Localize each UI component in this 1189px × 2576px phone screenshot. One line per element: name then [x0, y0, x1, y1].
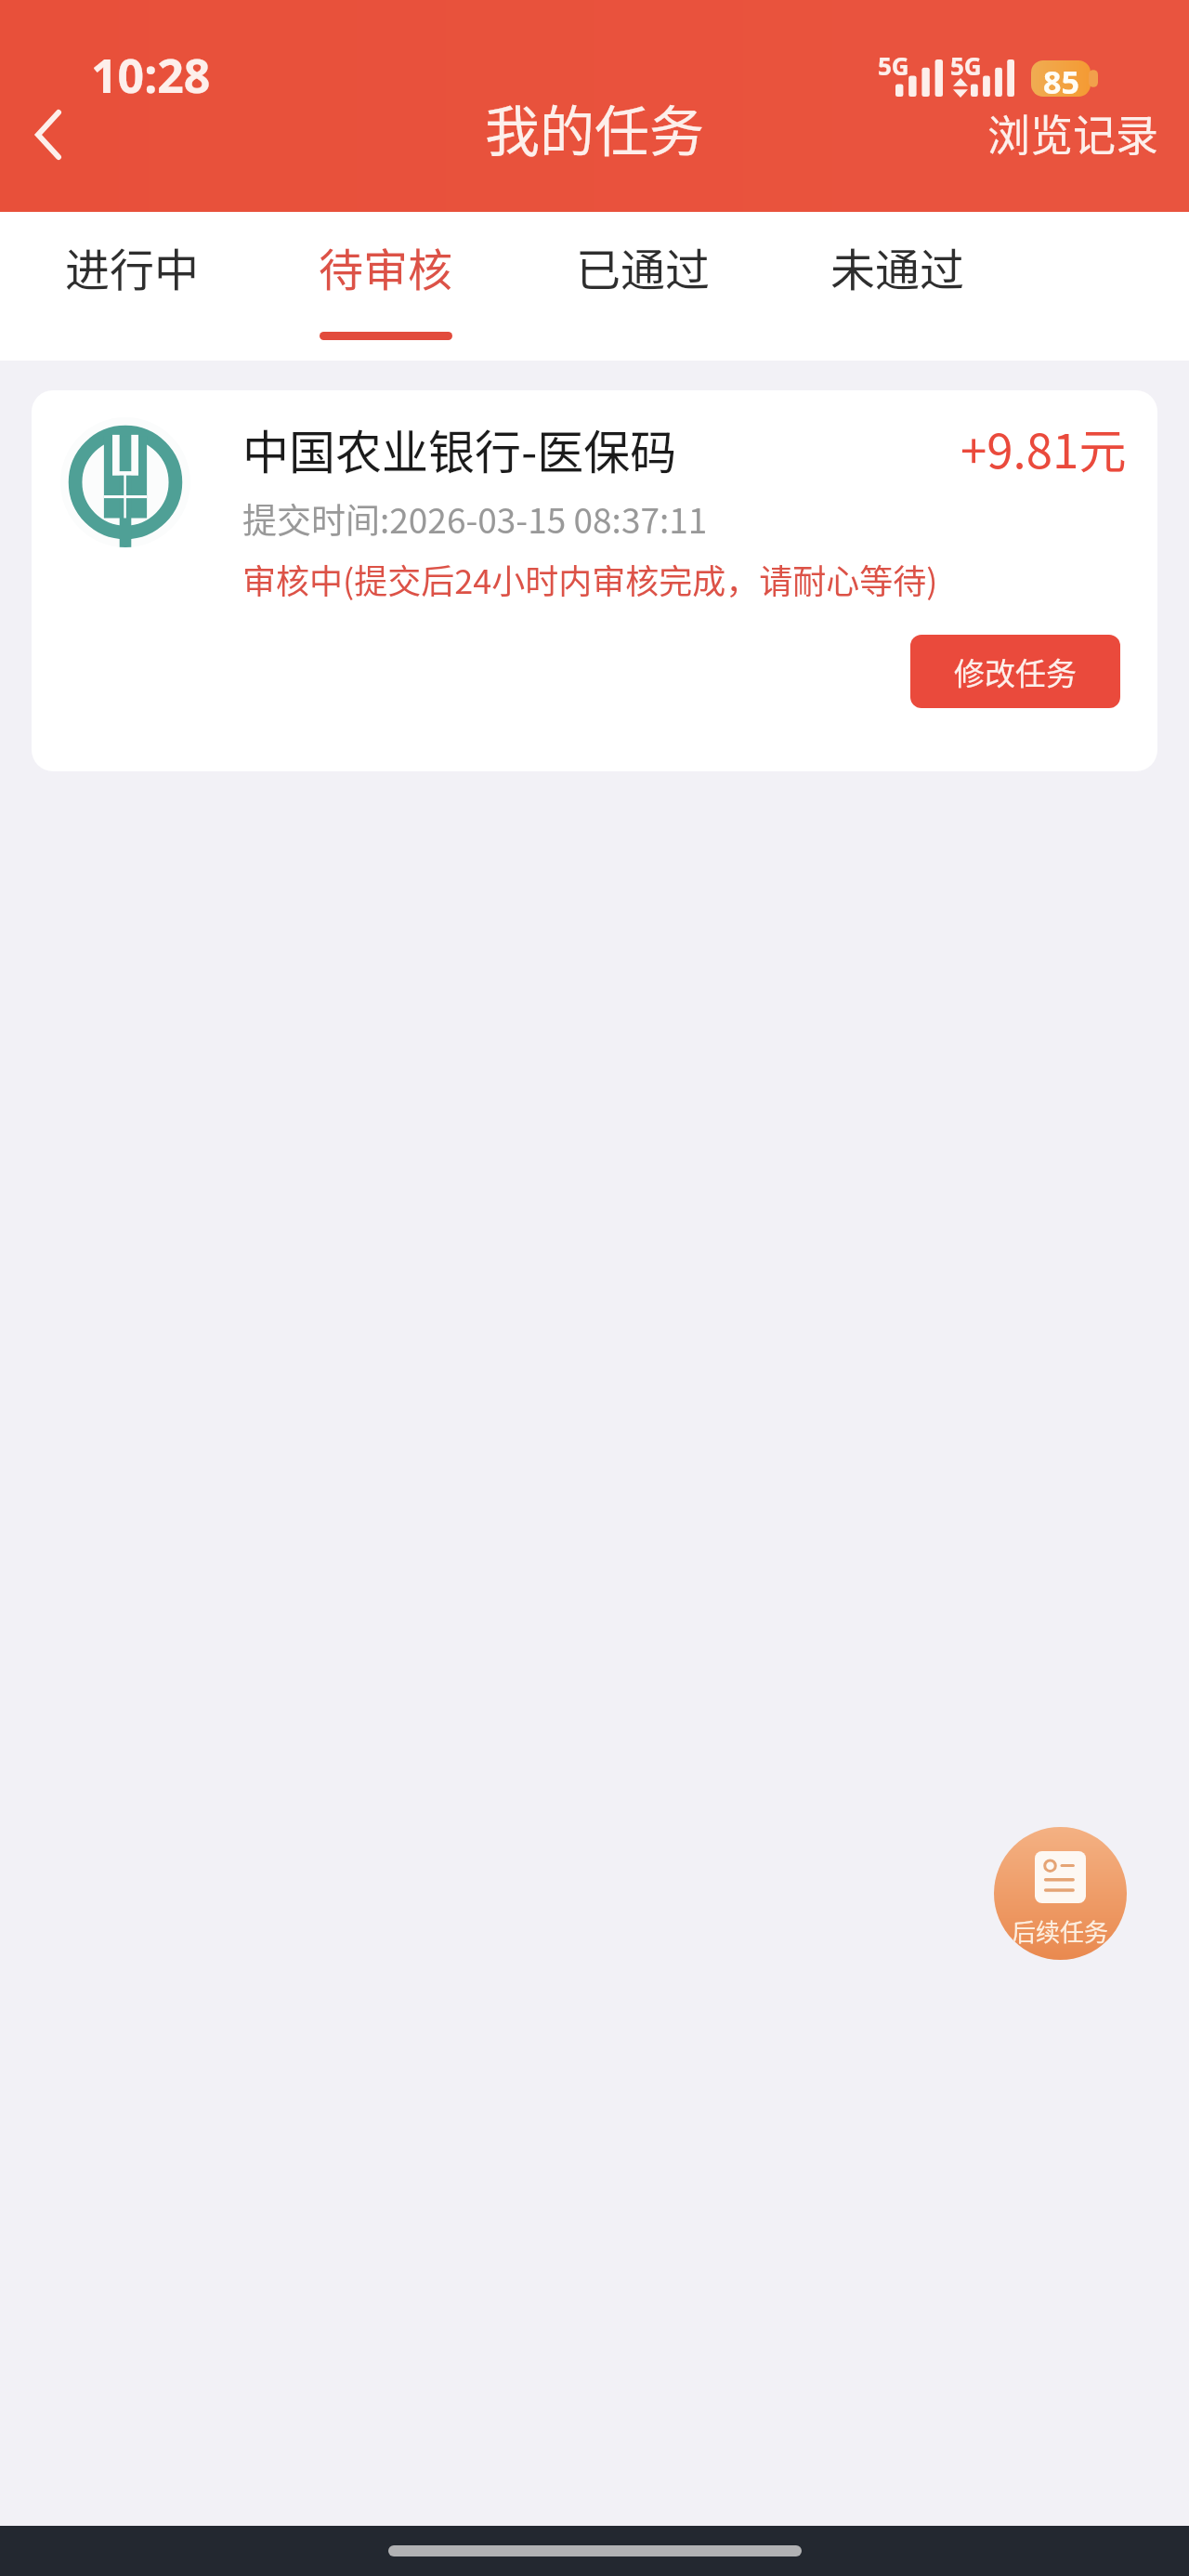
staticText: 浏览记录 [987, 101, 1158, 164]
staticText: 审核中(提交后24小时内审核完成，请耐心等待) [242, 555, 938, 603]
staticText: 提交时间:2026-03-15 08:37:11 [242, 493, 708, 544]
button[interactable]: 待审核 [258, 212, 513, 361]
button[interactable]: 进行中 [5, 212, 259, 361]
button[interactable]: 后续任务 [994, 1827, 1127, 1960]
staticText: 已通过 [576, 234, 711, 299]
staticText: 修改任务 [954, 650, 1077, 694]
staticText: 中国农业银行-医保码 [242, 415, 677, 482]
button[interactable]: 中国农业银行-医保码 [32, 390, 1157, 771]
button[interactable]: 浏览记录 [973, 92, 1173, 173]
staticText: 我的任务 [485, 88, 705, 167]
button[interactable]: 已通过 [516, 212, 770, 361]
staticText: +9.81元 [960, 414, 1127, 482]
button[interactable]: 未通过 [770, 212, 1025, 361]
staticText: 5G [950, 49, 982, 82]
staticText: 未通过 [830, 234, 965, 299]
staticText: 后续任务 [1012, 1913, 1109, 1949]
staticText: 85 [1043, 60, 1079, 97]
staticText: 5G [878, 49, 909, 82]
staticText: 10:28 [91, 44, 211, 107]
staticText: 进行中 [65, 234, 200, 299]
button[interactable]: 修改任务 [910, 635, 1120, 708]
button[interactable]: Back [7, 94, 89, 176]
staticText: 待审核 [319, 234, 453, 299]
